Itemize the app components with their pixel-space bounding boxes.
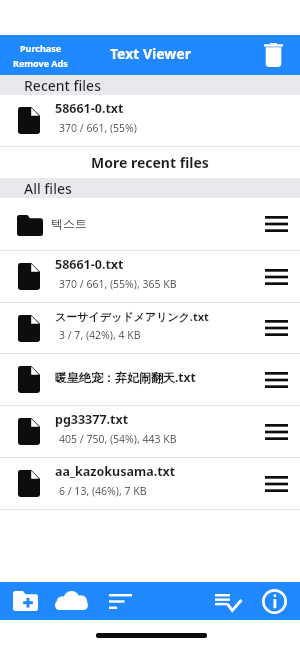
staticText: 3 / 7, (42%), 4 KB xyxy=(59,328,141,342)
staticText: 370 / 661, (55%), 365 KB xyxy=(59,277,177,291)
button[interactable]: 텍스트 xyxy=(0,198,300,250)
staticText: 58661-0.txt xyxy=(55,256,124,273)
staticText: aa_kazokusama.txt xyxy=(55,463,176,480)
button[interactable]: 暖皇绝宠：弃妃闹翻天.txt xyxy=(0,354,300,405)
button[interactable]: スーサイデッドメアリンク.txt xyxy=(0,303,300,353)
staticText: Remove Ads xyxy=(13,57,68,69)
button[interactable]: New folder xyxy=(6,582,45,620)
button[interactable]: Reorder xyxy=(252,406,300,457)
button[interactable]: aa_kazokusama.txt xyxy=(0,458,300,509)
button[interactable]: Reorder xyxy=(252,458,300,509)
staticText: 370 / 661, (55%) xyxy=(59,121,137,135)
button[interactable]: Reorder xyxy=(252,251,300,302)
button[interactable]: Reorder xyxy=(252,354,300,405)
button[interactable]: Delete xyxy=(256,38,290,72)
staticText: All files xyxy=(24,179,72,198)
button[interactable]: Cloud xyxy=(48,582,95,620)
staticText: More recent files xyxy=(91,153,209,172)
button[interactable]: pg33377.txt xyxy=(0,406,300,457)
staticText: 58661-0.txt xyxy=(55,100,124,117)
staticText: Recent files xyxy=(24,76,101,95)
button[interactable]: Reorder xyxy=(252,198,300,250)
button[interactable]: Info xyxy=(255,582,294,620)
staticText: pg33377.txt xyxy=(55,411,129,428)
button[interactable]: 58661-0.txt xyxy=(0,251,300,302)
staticText: スーサイデッドメアリンク.txt xyxy=(55,309,209,324)
staticText: Purchase xyxy=(20,42,62,54)
staticText: 暖皇绝宠：弃妃闹翻天.txt xyxy=(55,369,196,385)
button[interactable]: Purchase xyxy=(13,42,68,69)
staticText: 405 / 750, (54%), 443 KB xyxy=(59,432,177,446)
button[interactable]: 58661-0.txt xyxy=(0,95,300,146)
button[interactable]: Sort xyxy=(102,582,139,620)
staticText: 텍스트 xyxy=(51,216,248,231)
button[interactable]: Reorder xyxy=(252,303,300,353)
staticText: Text Viewer xyxy=(110,44,191,63)
button[interactable]: Select all xyxy=(208,582,248,620)
button[interactable]: More recent files xyxy=(0,147,300,178)
staticText: 6 / 13, (46%), 7 KB xyxy=(59,484,147,498)
